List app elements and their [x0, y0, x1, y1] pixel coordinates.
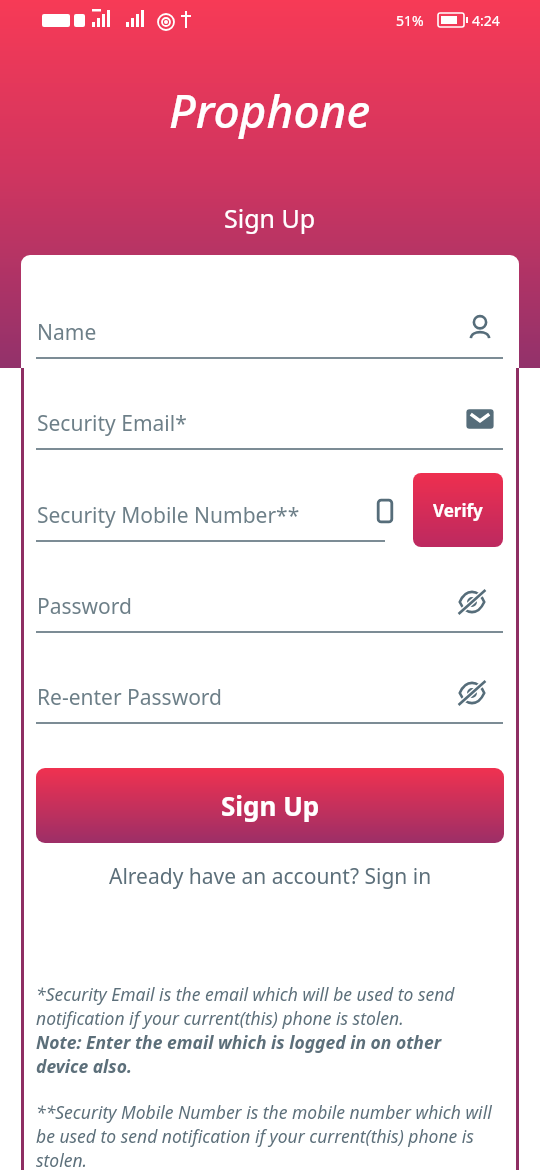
button[interactable]: Mobile number [368, 494, 402, 528]
button[interactable]: Password [36, 581, 503, 633]
staticText: Name [37, 318, 97, 347]
staticText: 51% [396, 11, 424, 30]
staticText: Security Email* [37, 409, 187, 438]
button[interactable]: Sign Up [36, 768, 504, 843]
staticText: Note: Enter the email which is logged in… [36, 1030, 494, 1078]
staticText: Verify [433, 499, 483, 522]
staticText: *Security Email is the email which will … [36, 982, 494, 1030]
button[interactable]: Toggle password visibility [455, 676, 489, 710]
staticText: Re-enter Password [37, 683, 223, 712]
button[interactable]: Name [36, 307, 503, 359]
staticText: Security Mobile Number** [37, 501, 300, 530]
button[interactable]: Security email [463, 402, 497, 436]
button[interactable]: Name [463, 311, 497, 345]
staticText: 4:24 [472, 11, 500, 30]
staticText: Password [37, 592, 132, 621]
button[interactable]: Verify [413, 473, 503, 547]
button[interactable]: Toggle password visibility [455, 585, 489, 619]
button[interactable]: Security Mobile Number** [36, 490, 385, 542]
staticText: Already have an account? Sign in [109, 862, 432, 891]
staticText: **Security Mobile Number is the mobile n… [36, 1100, 494, 1170]
button[interactable]: Security Email* [36, 398, 503, 450]
staticText: Sign Up [224, 201, 316, 235]
button[interactable]: Re-enter Password [36, 672, 503, 724]
staticText: Sign Up [221, 788, 320, 823]
button[interactable]: Already have an account? Sign in [36, 858, 504, 894]
staticText: Prophone [169, 79, 371, 142]
